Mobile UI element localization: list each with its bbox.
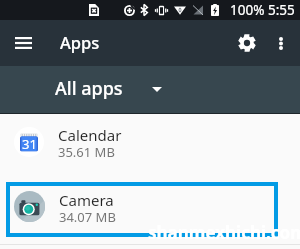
staticText: 34.07 MB [59,208,116,226]
button[interactable]: 31 [0,109,300,174]
button[interactable]: All apps [0,66,300,113]
button[interactable]: Navigation menu [0,20,46,66]
button[interactable]: Camera selected [6,182,278,237]
staticText: Apps [60,31,100,53]
button[interactable]: Settings [230,20,264,66]
staticText: Calendar [58,125,122,145]
staticText: Camera [59,190,114,210]
staticText: All apps [55,76,123,101]
button[interactable]: More options [264,20,298,66]
staticText: shanmexhichi.com [148,221,300,244]
staticText: 35.61 MB [58,143,115,161]
staticText: 100% [230,1,265,19]
button[interactable]: Camera [0,174,300,239]
staticText: 31 [22,135,37,153]
staticText: 5:55 [268,1,295,19]
